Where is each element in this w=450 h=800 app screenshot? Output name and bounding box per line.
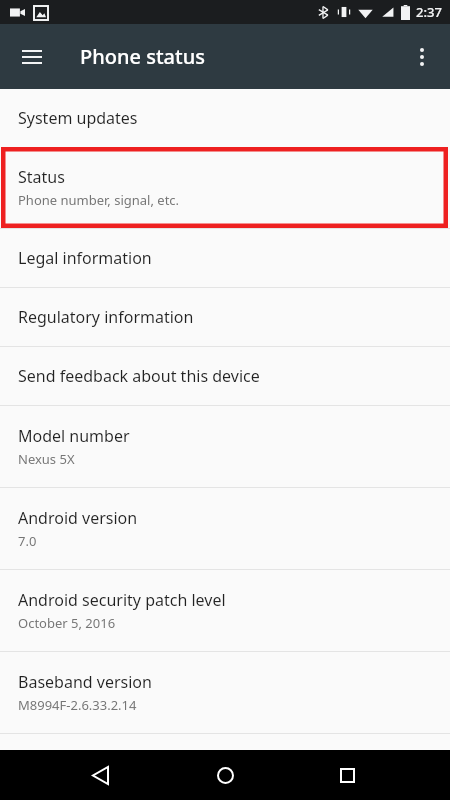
button[interactable]: Legal information [0,229,450,287]
button[interactable]: Android security patch level [0,570,450,651]
staticText: Android security patch level [18,589,226,611]
staticText: Nexus 5X [18,450,75,468]
staticText: System updates [18,107,138,129]
staticText: 2:37 [416,3,442,21]
staticText: Send feedback about this device [18,365,260,387]
button[interactable]: System updates [0,89,450,147]
button[interactable]: Send feedback about this device [0,347,450,405]
staticText: Status [18,166,65,188]
button[interactable]: Model number [0,406,450,487]
staticText: M8994F-2.6.33.2.14 [18,696,137,714]
staticText: Phone status [80,43,205,70]
staticText: Phone number, signal, etc. [18,191,180,209]
button[interactable]: Recent apps [325,753,369,797]
button[interactable]: More options [400,35,444,79]
staticText: Baseband version [18,671,152,693]
button[interactable]: Android version [0,488,450,569]
staticText: Android version [18,507,138,529]
button[interactable]: Regulatory information [0,288,450,346]
button[interactable]: Status [0,147,450,228]
staticText: Legal information [18,247,152,269]
staticText: Model number [18,425,130,447]
button[interactable]: Back [78,753,122,797]
button[interactable]: Home [203,753,247,797]
staticText: 7.0 [18,532,37,550]
button[interactable]: Open navigation drawer [10,35,54,79]
staticText: October 5, 2016 [18,614,116,632]
button[interactable]: Baseband version [0,652,450,733]
staticText: Regulatory information [18,306,194,328]
